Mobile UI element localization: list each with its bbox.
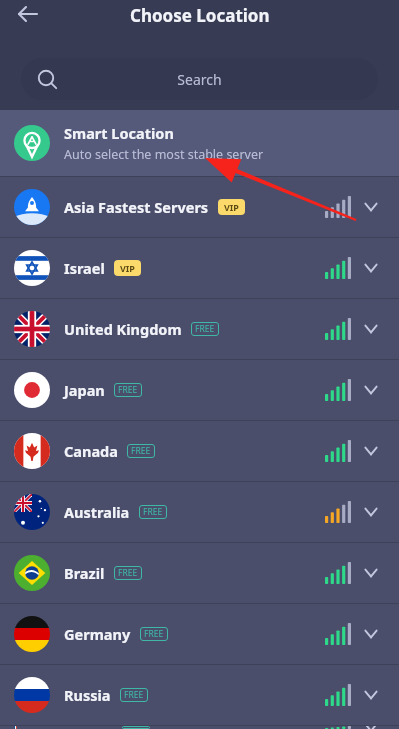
staticText: FREE bbox=[144, 628, 164, 640]
button[interactable]: Expand Israel bbox=[351, 248, 391, 288]
button[interactable]: France bbox=[0, 726, 399, 729]
staticText: VIP bbox=[224, 201, 239, 213]
staticText: Germany bbox=[64, 624, 131, 644]
staticText: Search bbox=[57, 70, 342, 89]
button[interactable]: Germany bbox=[0, 604, 399, 664]
staticText: Smart Location bbox=[64, 123, 174, 143]
button[interactable]: United Kingdom bbox=[0, 299, 399, 359]
button[interactable]: Search bbox=[21, 58, 378, 100]
button[interactable]: Japan bbox=[0, 360, 399, 420]
button[interactable]: Expand United Kingdom bbox=[351, 309, 391, 349]
staticText: Asia Fastest Servers bbox=[64, 197, 209, 217]
button[interactable]: Expand Australia bbox=[351, 492, 391, 532]
button[interactable]: Expand Germany bbox=[351, 614, 391, 654]
button[interactable]: Canada bbox=[0, 421, 399, 481]
staticText: FREE bbox=[124, 689, 144, 701]
button[interactable]: Russia bbox=[0, 665, 399, 725]
staticText: Australia bbox=[64, 502, 130, 522]
staticText: FREE bbox=[131, 445, 151, 457]
button[interactable]: Expand France bbox=[351, 726, 391, 729]
staticText: FREE bbox=[118, 384, 138, 396]
button[interactable]: Expand Brazil bbox=[351, 553, 391, 593]
staticText: VIP bbox=[120, 262, 135, 274]
staticText: Choose Location bbox=[130, 4, 270, 27]
button[interactable]: Brazil bbox=[0, 543, 399, 603]
staticText: United Kingdom bbox=[64, 319, 182, 339]
staticText: FREE bbox=[195, 323, 215, 335]
staticText: Brazil bbox=[64, 563, 105, 583]
button[interactable]: Asia Fastest Servers bbox=[0, 177, 399, 237]
staticText: Auto select the most stable server bbox=[64, 146, 264, 163]
button[interactable]: Expand Russia bbox=[351, 675, 391, 715]
staticText: Israel bbox=[64, 258, 105, 278]
button[interactable]: Israel bbox=[0, 238, 399, 298]
staticText: FREE bbox=[118, 567, 138, 579]
button[interactable]: Smart Location bbox=[0, 110, 399, 176]
button[interactable]: Back bbox=[8, 0, 48, 40]
button[interactable]: Expand Japan bbox=[351, 370, 391, 410]
button[interactable]: Expand Asia Fastest Servers bbox=[351, 187, 391, 227]
staticText: FREE bbox=[143, 506, 163, 518]
button[interactable]: Australia bbox=[0, 482, 399, 542]
button[interactable]: Expand Canada bbox=[351, 431, 391, 471]
staticText: Canada bbox=[64, 441, 118, 461]
staticText: Russia bbox=[64, 685, 111, 705]
staticText: Japan bbox=[64, 380, 105, 400]
